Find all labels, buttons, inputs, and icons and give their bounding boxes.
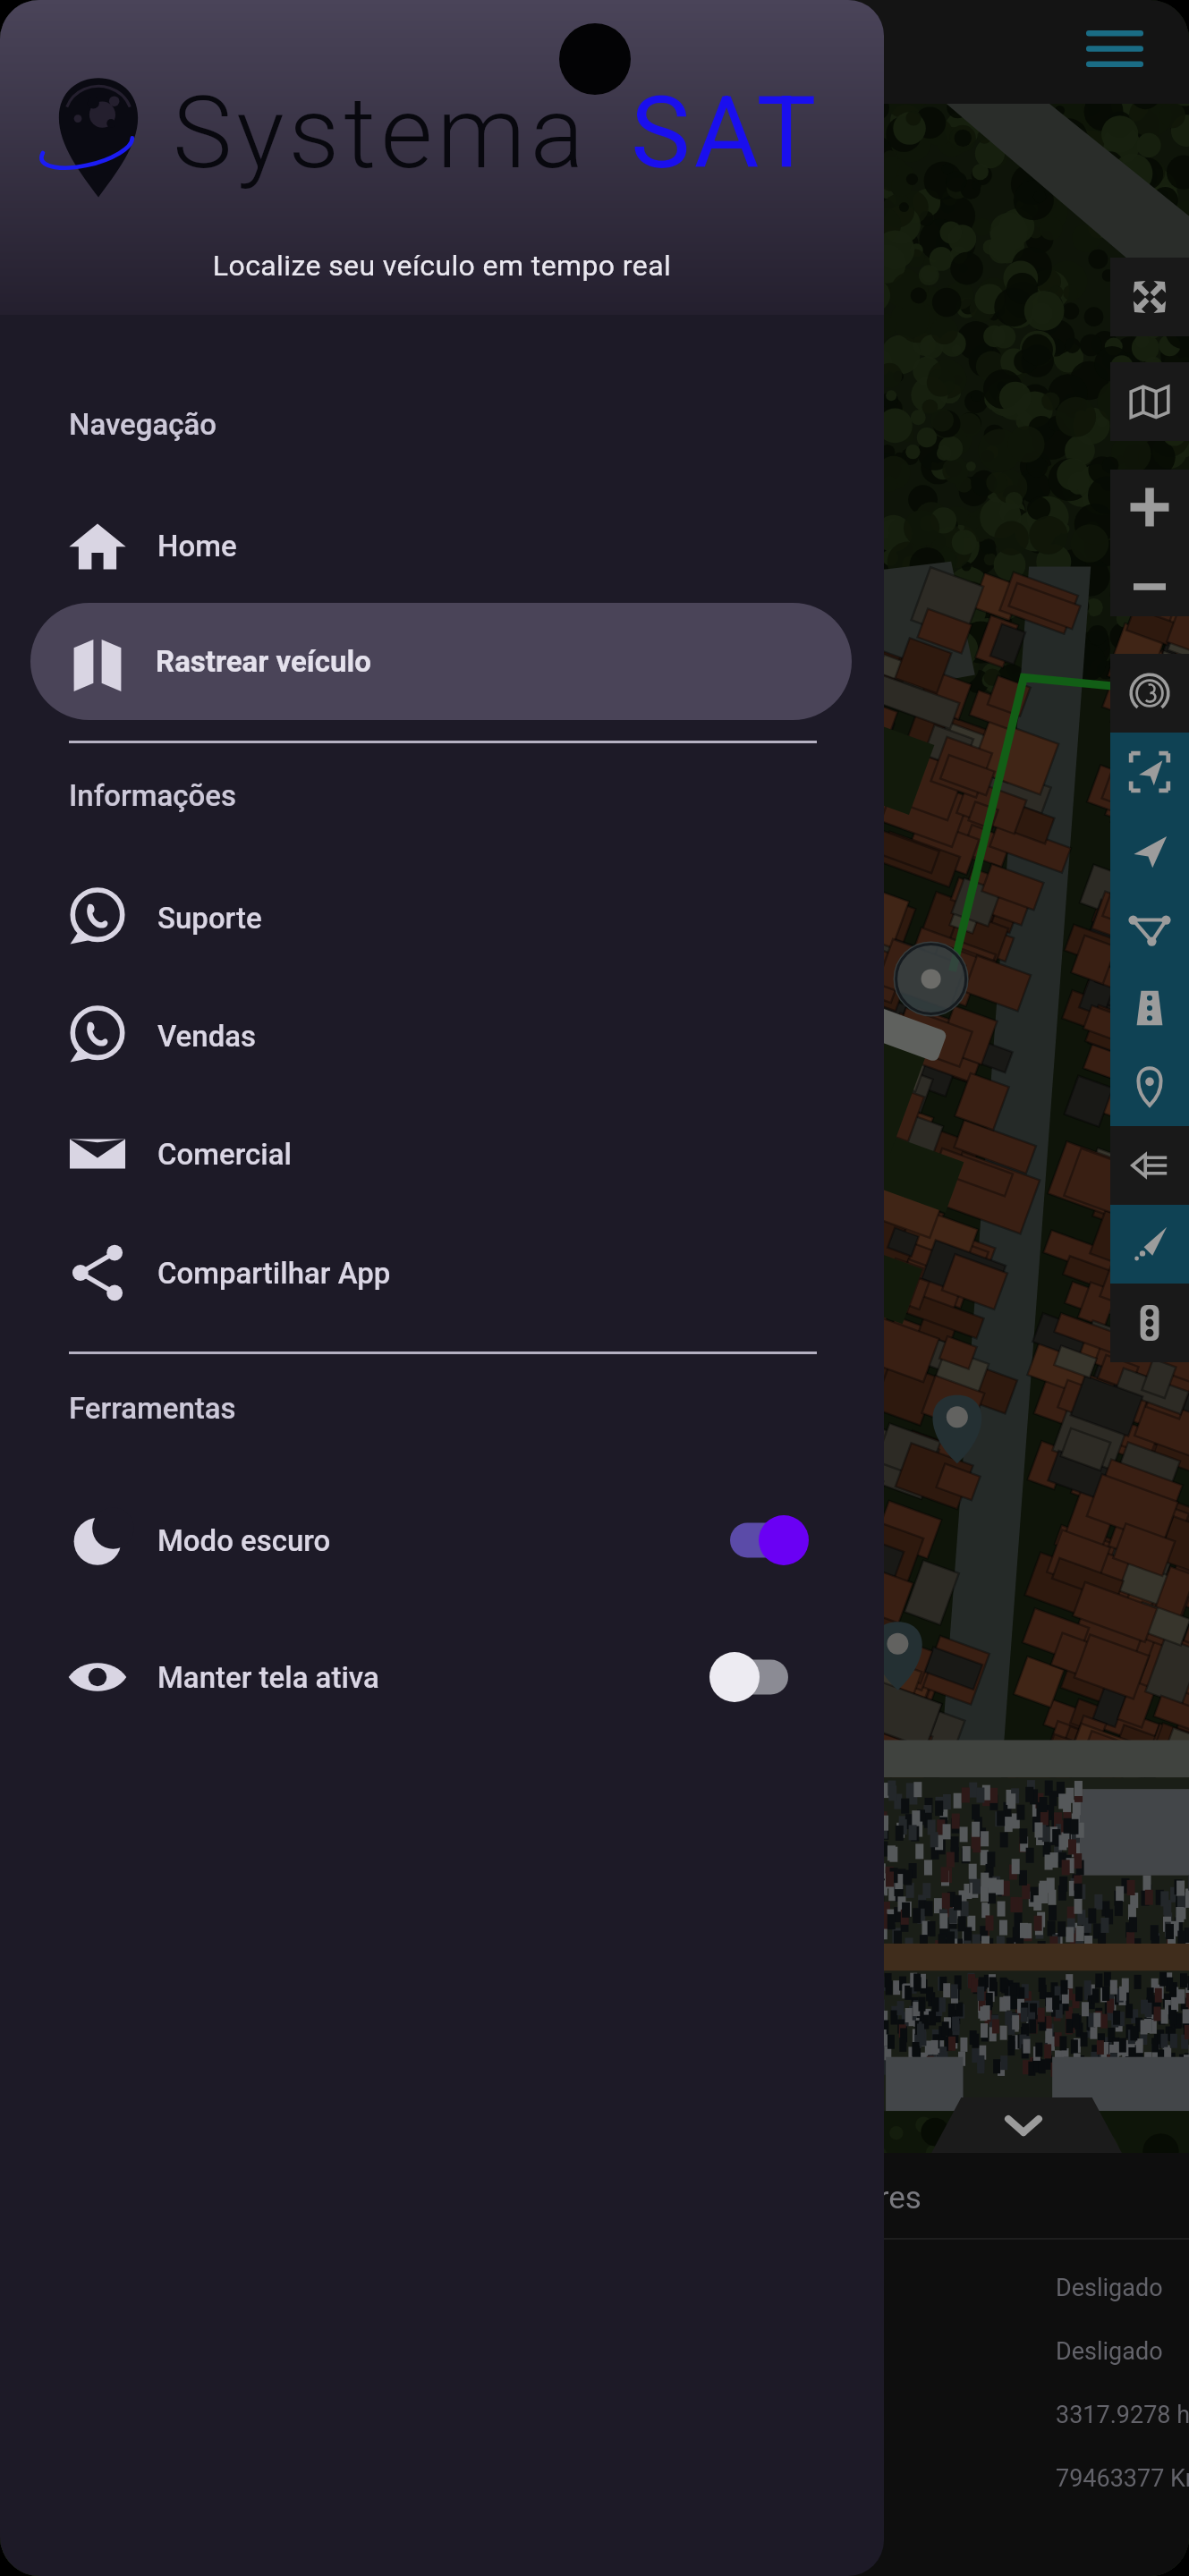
button[interactable]: Manter tela ativa bbox=[0, 1623, 884, 1731]
button[interactable]: Trânsito bbox=[1110, 1284, 1189, 1362]
staticText: 3317.9278 h bbox=[1056, 2401, 1189, 2429]
button[interactable]: Zoom bbox=[1110, 470, 1189, 616]
staticText: Rastrear veículo bbox=[156, 644, 371, 679]
button[interactable]: Rastrear veículo bbox=[30, 603, 852, 720]
button[interactable]: Modo escuro bbox=[726, 1512, 809, 1569]
button[interactable]: Comercial bbox=[0, 1102, 884, 1206]
staticText: 79463377 Km bbox=[1056, 2464, 1189, 2493]
staticText: Home bbox=[157, 529, 237, 563]
staticText: Ferramentas bbox=[69, 1391, 236, 1426]
button[interactable]: Rota bbox=[1110, 969, 1189, 1047]
button[interactable]: Marcadores bbox=[1110, 1047, 1189, 1126]
button[interactable]: Abrir menu bbox=[1072, 9, 1158, 95]
staticText: SAT bbox=[631, 74, 820, 191]
staticText: Sensores bbox=[792, 2180, 921, 2216]
button[interactable]: Cerca virtual bbox=[1110, 890, 1189, 969]
button[interactable]: Home bbox=[0, 494, 884, 597]
staticText: Desligado bbox=[1056, 2274, 1163, 2302]
button[interactable]: Manter tela ativa bbox=[709, 1648, 792, 1706]
button[interactable]: Suporte bbox=[0, 866, 884, 970]
button[interactable]: Tipo de mapa bbox=[1110, 362, 1189, 441]
staticText: Navegação bbox=[69, 407, 217, 442]
staticText: Localize seu veículo em tempo real bbox=[0, 249, 884, 283]
button[interactable]: Compartilhar App bbox=[0, 1221, 884, 1325]
staticText: Manter tela ativa bbox=[157, 1660, 379, 1695]
button[interactable]: Voltar bbox=[1110, 1126, 1189, 1205]
button[interactable]: Centralizar bbox=[1110, 733, 1189, 811]
button[interactable]: Direção bbox=[1110, 811, 1189, 890]
button[interactable]: Recolher painel bbox=[988, 2097, 1059, 2153]
button[interactable]: Tela cheia bbox=[1110, 258, 1189, 336]
button[interactable]: Vendas bbox=[0, 984, 884, 1088]
staticText: Informações bbox=[69, 778, 236, 813]
staticText: Suporte bbox=[157, 901, 262, 936]
staticText: Vendas bbox=[157, 1019, 257, 1054]
button[interactable]: Modo escuro bbox=[0, 1487, 884, 1594]
staticText: Desligado bbox=[1056, 2337, 1163, 2366]
staticText: Comercial bbox=[157, 1137, 292, 1172]
staticText: Modo escuro bbox=[157, 1523, 331, 1558]
button[interactable]: Histórico bbox=[1110, 1205, 1189, 1284]
button[interactable]: Velocidade bbox=[1110, 654, 1189, 733]
staticText: Compartilhar App bbox=[157, 1256, 391, 1291]
staticText: Systema bbox=[173, 74, 589, 191]
